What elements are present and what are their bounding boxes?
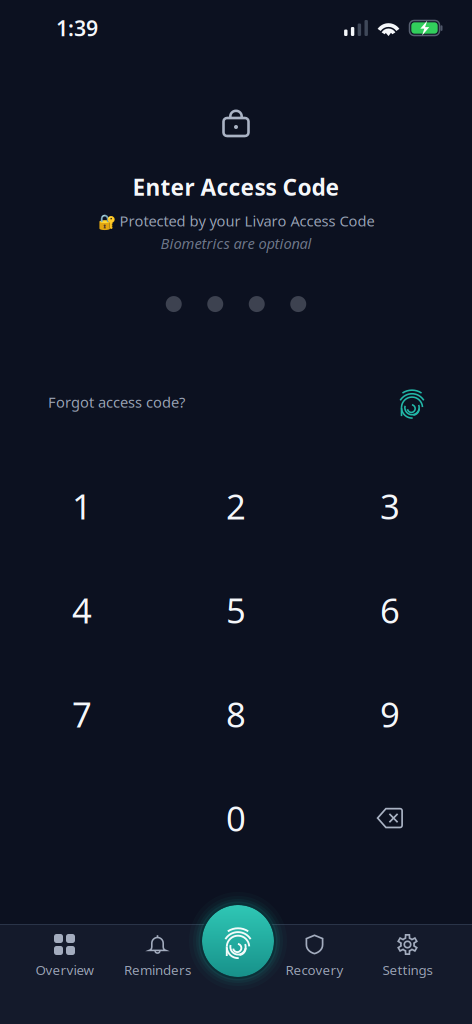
button[interactable]: Scan fingerprint [186,891,286,991]
button[interactable]: 2 [176,465,296,547]
staticText: 7 [72,691,92,737]
button[interactable]: 6 [330,569,450,651]
staticText: Settings [382,961,432,979]
button[interactable]: Delete [330,777,450,859]
staticText: Forgot access code? [48,392,185,412]
staticText: Enter Access Code [132,172,339,202]
button[interactable]: Overview [18,924,111,1024]
button[interactable]: 3 [330,465,450,547]
button[interactable]: 8 [176,673,296,755]
staticText: Biometrics are optional [160,234,311,253]
staticText: 9 [380,691,400,737]
staticText: 6 [380,587,400,633]
staticText: 2 [226,483,246,529]
staticText: Recovery [285,961,343,979]
button[interactable]: Recovery [268,924,361,1024]
staticText: Overview [35,961,93,979]
button[interactable]: 0 [176,777,296,859]
staticText: 1 [72,483,92,529]
button[interactable]: 9 [330,673,450,755]
staticText: Reminders [124,961,191,979]
staticText: 0 [226,795,246,841]
staticText: 🔐 Protected by your Livaro Access Code [97,211,374,231]
staticText: 4 [72,587,92,633]
staticText: 1:39 [56,14,98,42]
button[interactable]: 5 [176,569,296,651]
button[interactable]: Reminders [111,924,204,1024]
button[interactable]: 1 [22,465,142,547]
staticText: 3 [380,483,400,529]
button[interactable]: 4 [22,569,142,651]
staticText: 8 [226,691,246,737]
button[interactable]: Use biometrics [394,387,424,417]
button[interactable]: 7 [22,673,142,755]
button[interactable]: Forgot access code? [48,387,185,417]
staticText: 5 [226,587,246,633]
button[interactable]: Settings [361,924,454,1024]
